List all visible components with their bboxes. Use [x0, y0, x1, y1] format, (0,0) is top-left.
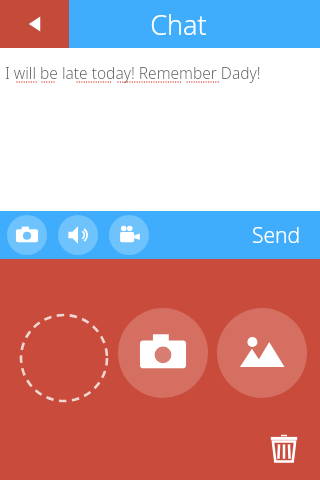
button[interactable]: Record audio: [58, 215, 98, 255]
button[interactable]: Gallery: [217, 308, 307, 398]
staticText: I will be late today! Remember Dady!: [5, 62, 261, 83]
button[interactable]: Send: [233, 211, 320, 259]
staticText: Chat: [150, 6, 207, 43]
button[interactable]: Take photo: [7, 215, 47, 255]
button[interactable]: Back: [0, 0, 69, 48]
button[interactable]: Camera: [118, 308, 208, 398]
staticText: Send: [252, 221, 301, 250]
button[interactable]: Empty slot: [19, 313, 109, 403]
button[interactable]: Record video: [109, 215, 149, 255]
button[interactable]: Delete: [262, 426, 306, 470]
